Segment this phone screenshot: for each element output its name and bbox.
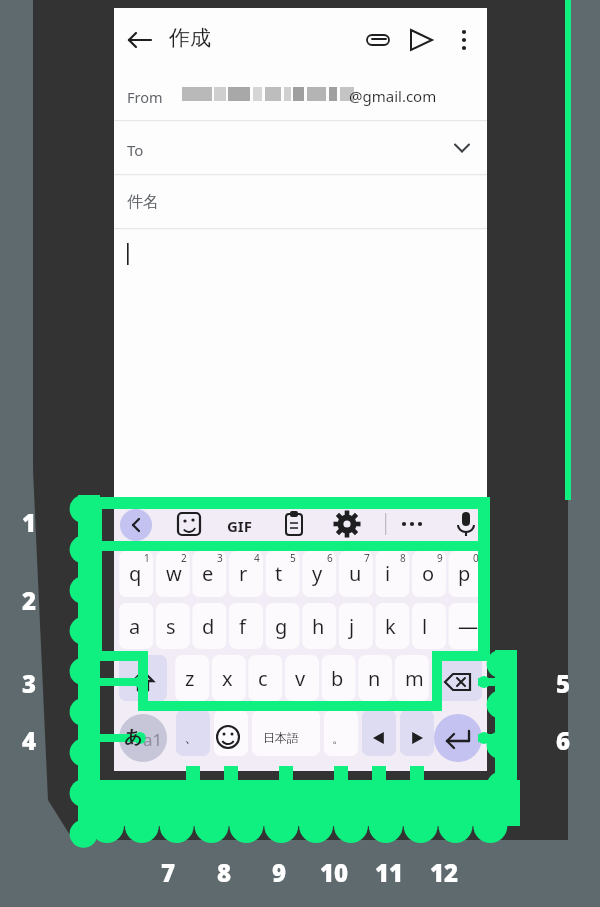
staticText: 10 [320, 856, 349, 889]
button[interactable]: Clipboard [276, 507, 312, 543]
button[interactable]: GIF [223, 507, 259, 543]
staticText: From [127, 87, 163, 107]
staticText: v [295, 665, 306, 692]
staticText: 7 [364, 551, 370, 565]
staticText: a1 [143, 728, 163, 751]
staticText: @gmail.com [349, 86, 437, 106]
staticText: u [349, 560, 362, 587]
button[interactable]: More [394, 507, 430, 543]
button[interactable]: Enter [434, 714, 482, 762]
staticText: 2 [181, 551, 187, 565]
staticText: s [166, 613, 176, 640]
button[interactable]: Voice input [448, 507, 484, 543]
staticText: 。 [332, 730, 345, 746]
staticText: 8 [217, 856, 232, 889]
staticText: z [185, 665, 195, 692]
staticText: 件名 [127, 192, 159, 212]
staticText: 8 [400, 551, 406, 565]
staticText: 4 [254, 551, 260, 565]
staticText: 6 [556, 724, 571, 757]
staticText: 11 [375, 856, 404, 889]
staticText: あ [124, 726, 143, 749]
staticText: e [202, 560, 214, 587]
button[interactable]: More options [446, 22, 482, 58]
staticText: o [422, 560, 435, 587]
staticText: 、 [184, 728, 199, 747]
staticText: w [166, 560, 182, 587]
staticText: h [312, 613, 325, 640]
staticText: n [368, 665, 381, 692]
staticText: 3 [22, 667, 37, 700]
staticText: GIF [227, 516, 252, 536]
staticText: a [129, 613, 141, 640]
button[interactable]: Attach file [360, 22, 396, 58]
staticText: 9 [437, 551, 443, 565]
staticText: i [385, 560, 391, 587]
button[interactable]: Subject [114, 174, 487, 228]
button[interactable]: Stickers [171, 507, 207, 543]
button[interactable]: Settings [329, 507, 365, 543]
staticText: 5 [290, 551, 296, 565]
button[interactable]: Back to keyboard [118, 507, 154, 543]
button[interactable]: Switch language [119, 714, 167, 762]
staticText: l [422, 613, 428, 640]
button[interactable]: Send [403, 22, 439, 58]
button[interactable]: Backspace [434, 655, 482, 701]
staticText: 3 [217, 551, 223, 565]
staticText: y [312, 560, 323, 587]
staticText: 0 [473, 551, 479, 565]
staticText: m [405, 665, 424, 692]
staticText: k [385, 613, 396, 640]
staticText: 1 [144, 551, 150, 565]
staticText: 12 [430, 856, 459, 889]
staticText: j [349, 613, 355, 640]
staticText: To [127, 140, 144, 160]
staticText: t [275, 560, 283, 587]
staticText: x [222, 665, 233, 692]
staticText: 2 [22, 584, 37, 617]
button[interactable]: Back [127, 22, 163, 58]
staticText: c [258, 665, 268, 692]
staticText: p [458, 560, 471, 587]
staticText: b [331, 665, 344, 692]
staticText: 5 [556, 667, 571, 700]
staticText: q [129, 560, 142, 587]
staticText: g [275, 613, 288, 640]
staticText: 9 [272, 856, 287, 889]
staticText: 日本語 [263, 730, 299, 745]
staticText: 1 [22, 506, 37, 539]
staticText: 4 [22, 724, 37, 757]
staticText: r [239, 560, 248, 587]
button[interactable]: Shift [119, 655, 167, 701]
staticText: 作成 [169, 25, 211, 51]
staticText: 7 [161, 856, 176, 889]
staticText: f [239, 613, 246, 640]
staticText: — [458, 613, 478, 640]
button[interactable]: To [114, 120, 487, 174]
staticText: 6 [327, 551, 333, 565]
staticText: d [202, 613, 215, 640]
